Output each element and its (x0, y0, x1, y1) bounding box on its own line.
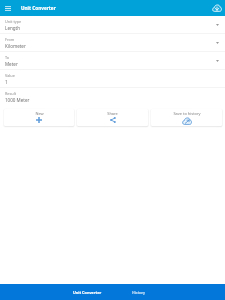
staticText: From (5, 37, 15, 42)
button[interactable]: New (4, 109, 74, 126)
staticText: Unit Converter (73, 290, 102, 295)
staticText: Meter (5, 61, 18, 67)
staticText: Result (5, 91, 17, 96)
button[interactable]: Result (0, 88, 225, 104)
button[interactable]: Unit type (0, 16, 225, 34)
button[interactable]: Menu (5, 6, 11, 11)
staticText: To (5, 55, 10, 60)
button[interactable]: From (0, 34, 225, 52)
staticText: 1 (5, 79, 8, 85)
button[interactable]: Unit Converter (61, 284, 113, 300)
button[interactable]: To (0, 52, 225, 70)
staticText: Unit Converter (21, 5, 56, 11)
staticText: Length (5, 25, 21, 31)
staticText: Value (5, 73, 15, 78)
button[interactable]: Save to history (151, 109, 222, 126)
staticText: Share (107, 111, 118, 116)
staticText: Unit type (5, 19, 22, 24)
button[interactable]: History (113, 284, 165, 300)
staticText: New (35, 111, 44, 116)
staticText: Save to history (173, 111, 201, 116)
staticText: Kilometer (5, 43, 26, 49)
button[interactable]: Download (212, 4, 222, 12)
staticText: History (132, 290, 146, 295)
staticText: 1000 Meter (5, 97, 30, 103)
button[interactable]: Value (0, 70, 225, 88)
button[interactable]: Share (77, 109, 148, 126)
